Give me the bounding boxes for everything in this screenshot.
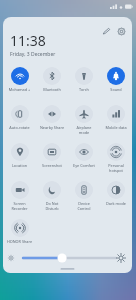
staticText: 11:38 bbox=[10, 31, 46, 50]
staticText: Sound bbox=[100, 87, 132, 92]
button[interactable]: HONOR Share bbox=[3, 219, 36, 244]
staticText: Location bbox=[3, 163, 36, 168]
button[interactable]: Location bbox=[3, 143, 36, 168]
staticText: Mohamad + bbox=[3, 87, 36, 92]
button[interactable]: Eye Comfort bbox=[68, 143, 100, 168]
button[interactable]: Mohamad + bbox=[3, 67, 36, 92]
button[interactable]: Torch bbox=[68, 67, 100, 92]
staticText: Mobile data bbox=[100, 125, 132, 130]
button[interactable]: Do Not Disturb bbox=[36, 181, 68, 211]
button[interactable]: Mobile data bbox=[100, 105, 132, 130]
button[interactable]: Screen Recorder bbox=[3, 181, 36, 211]
button[interactable]: Nearby Share bbox=[36, 105, 68, 130]
staticText: Do Not Disturb bbox=[36, 201, 68, 211]
button[interactable]: Edit bbox=[102, 27, 111, 36]
button[interactable]: Device Control bbox=[68, 181, 100, 211]
button[interactable]: Settings bbox=[117, 27, 126, 36]
staticText: Personal hotspot bbox=[100, 163, 132, 173]
staticText: HONOR Share bbox=[3, 239, 36, 244]
staticText: Screen Recorder bbox=[3, 201, 36, 211]
staticText: Device Control bbox=[68, 201, 100, 211]
staticText: Dark mode bbox=[100, 201, 132, 206]
button[interactable]: Personal hotspot bbox=[100, 143, 132, 173]
button[interactable]: Screenshot bbox=[36, 143, 68, 168]
button[interactable]: Airplane mode bbox=[68, 105, 100, 135]
button[interactable]: Bluetooth bbox=[36, 67, 68, 92]
staticText: Eye Comfort bbox=[68, 163, 100, 168]
staticText: Torch bbox=[68, 87, 100, 92]
staticText: Nearby Share bbox=[36, 125, 68, 130]
button[interactable]: Sound bbox=[100, 67, 132, 92]
staticText: Auto-rotate bbox=[3, 125, 36, 130]
staticText: Bluetooth bbox=[36, 87, 68, 92]
staticText: Airplane mode bbox=[68, 125, 100, 135]
button[interactable]: Brightness bbox=[3, 239, 132, 273]
staticText: Friday, 3 December bbox=[10, 51, 56, 58]
button[interactable]: Dark mode bbox=[100, 181, 132, 206]
staticText: Screenshot bbox=[36, 163, 68, 168]
button[interactable]: Auto-rotate bbox=[3, 105, 36, 130]
